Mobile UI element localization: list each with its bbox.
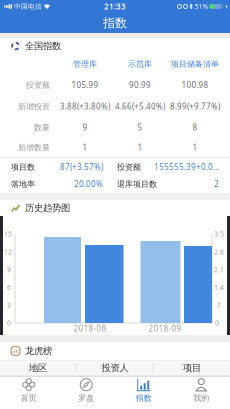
staticText: 地区 [29, 362, 47, 374]
staticText: 1.4 [214, 283, 224, 292]
staticText: 1 [192, 142, 197, 153]
staticText: 龙虎榜 [25, 345, 52, 357]
staticText: 3 [7, 301, 11, 310]
staticText: 罗盘 [78, 393, 94, 403]
button[interactable]: 我的 [172, 377, 230, 409]
staticText: 9 [7, 265, 11, 274]
staticText: 落地率 [11, 179, 35, 189]
staticText: 项目储备清单 [171, 59, 219, 69]
staticText: 指数 [103, 16, 127, 30]
staticText: 投资人 [101, 362, 128, 374]
staticText: 12 [4, 247, 12, 256]
staticText: 首页 [21, 393, 37, 403]
staticText: 指数 [136, 393, 152, 403]
staticText: 历史趋势图 [25, 202, 70, 214]
button[interactable]: 罗盘 [57, 377, 115, 409]
staticText: 105.99 [71, 80, 98, 90]
staticText: 20.00% [74, 179, 103, 189]
staticText: 中国电信 [14, 2, 42, 11]
staticText: 2.1 [214, 265, 224, 274]
staticText: 3.5 [214, 230, 224, 238]
staticText: 投资额 [117, 162, 141, 172]
staticText: .7 [215, 301, 221, 310]
staticText: 87(+3.57%) [60, 162, 103, 172]
button[interactable]: 地区 [0, 361, 76, 375]
staticText: 8 [192, 122, 197, 133]
staticText: 数量 [34, 123, 50, 132]
staticText: 项目数 [11, 162, 35, 172]
staticText: 退库项目数 [117, 179, 157, 189]
staticText: 3.88(+3.80%) [60, 101, 110, 112]
staticText: 5 [137, 122, 142, 133]
staticText: 1 [82, 142, 87, 153]
button[interactable]: 投资人 [77, 361, 153, 375]
button[interactable]: 首页 [0, 377, 57, 409]
staticText: 0 [215, 319, 219, 327]
staticText: 4.66(+5.40%) [115, 101, 165, 112]
staticText: 9 [82, 122, 87, 133]
staticText: 51% [194, 2, 208, 11]
staticText: 90.99 [129, 80, 151, 90]
staticText: 管理库 [73, 59, 97, 69]
staticText: 155555.39+0.0... [154, 162, 219, 172]
staticText: 全国指数 [25, 40, 61, 52]
staticText: 投资额 [26, 80, 50, 90]
staticText: 2018-08 [73, 323, 106, 334]
staticText: 新增投资 [18, 102, 50, 111]
staticText: 示范库 [128, 59, 152, 69]
staticText: 0 [7, 319, 11, 327]
staticText: 8.99(+9.77%) [170, 101, 220, 112]
staticText: 1 [137, 142, 142, 153]
staticText: 2.8 [214, 247, 224, 256]
button[interactable]: 项目 [154, 361, 230, 375]
staticText: 项目 [183, 362, 201, 374]
staticText: 2018-09 [148, 323, 181, 334]
staticText: 21:33 [104, 1, 126, 12]
staticText: 我的 [193, 393, 209, 403]
staticText: 6 [7, 283, 11, 292]
staticText: 100.98 [181, 80, 208, 90]
staticText: 15 [4, 230, 12, 238]
staticText: 新增数量 [18, 143, 50, 152]
button[interactable]: 指数 [115, 377, 172, 409]
staticText: 2 [214, 179, 219, 189]
